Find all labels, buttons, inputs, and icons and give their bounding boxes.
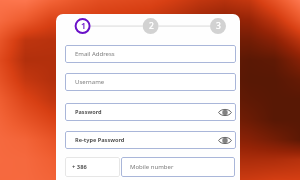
button[interactable]: Username: [65, 73, 236, 91]
button[interactable]: Re-type Password: [65, 131, 236, 149]
staticText: 3: [216, 20, 221, 32]
button[interactable]: Show password: [218, 133, 232, 147]
staticText: Email Address: [75, 50, 115, 58]
staticText: 2: [149, 20, 154, 32]
button[interactable]: Show password: [218, 105, 232, 119]
button[interactable]: Email Address: [65, 45, 236, 63]
staticText: Username: [75, 78, 105, 86]
staticText: Password: [75, 108, 102, 116]
button[interactable]: 2: [143, 18, 159, 34]
staticText: 1: [81, 20, 86, 32]
button[interactable]: + 386: [65, 157, 120, 177]
button[interactable]: 3: [210, 18, 226, 34]
button[interactable]: Mobile number: [121, 157, 235, 177]
staticText: Re-type Password: [75, 136, 125, 144]
staticText: + 386: [72, 163, 87, 171]
staticText: Mobile number: [130, 163, 174, 171]
button[interactable]: 1: [75, 18, 91, 34]
button[interactable]: Password: [65, 103, 236, 121]
